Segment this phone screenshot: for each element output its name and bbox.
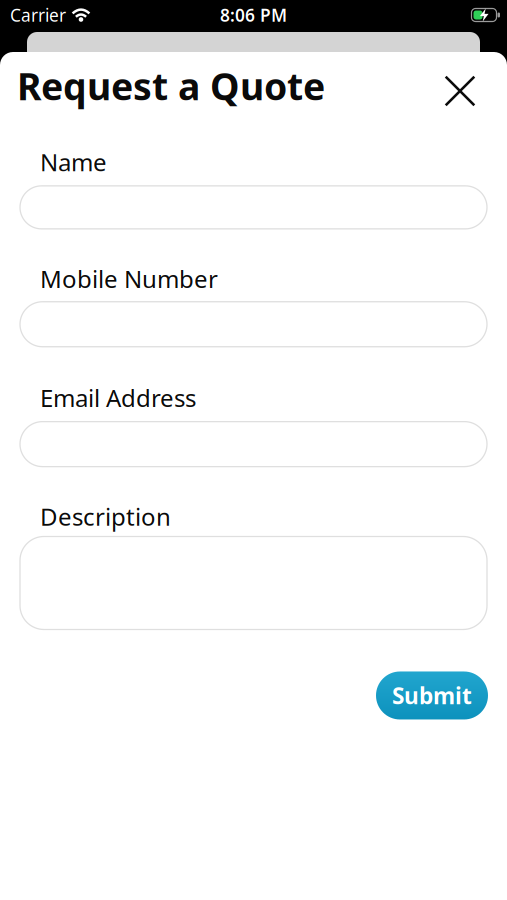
staticText: Description	[40, 501, 171, 532]
button[interactable]: Submit	[376, 671, 488, 719]
button[interactable]: Description	[0, 536, 507, 629]
staticText: Email Address	[40, 382, 196, 414]
button[interactable]: Email Address	[0, 422, 507, 467]
staticText: Name	[40, 146, 107, 178]
button[interactable]: Name	[0, 186, 507, 229]
staticText: Carrier	[10, 3, 66, 26]
staticText: Request a Quote	[17, 61, 325, 111]
staticText: 8:06 PM	[220, 3, 287, 26]
staticText: Mobile Number	[40, 263, 218, 295]
button[interactable]: Mobile Number	[0, 302, 507, 347]
staticText: Submit	[392, 680, 472, 710]
button[interactable]: Close	[439, 70, 481, 112]
